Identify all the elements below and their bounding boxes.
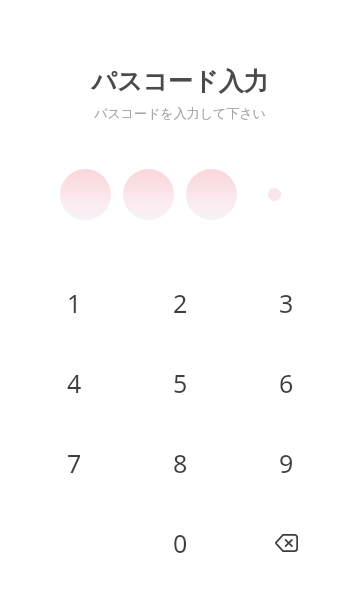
button[interactable]: 3 <box>233 263 339 343</box>
button[interactable]: 8 <box>127 423 233 503</box>
button[interactable]: 7 <box>21 423 127 503</box>
other: Backspace <box>274 534 298 552</box>
staticText: 3 <box>279 286 294 320</box>
button[interactable]: 5 <box>127 343 233 423</box>
button[interactable]: 0 <box>127 503 233 583</box>
staticText: 2 <box>173 286 188 320</box>
button[interactable]: 4 <box>21 343 127 423</box>
staticText: 7 <box>67 446 82 480</box>
button[interactable]: 1 <box>21 263 127 343</box>
button[interactable]: Backspace <box>233 503 339 583</box>
staticText: パスコードを入力して下さい <box>0 105 360 121</box>
staticText: 0 <box>173 526 188 560</box>
button[interactable]: 2 <box>127 263 233 343</box>
staticText: 4 <box>67 366 82 400</box>
staticText: 5 <box>173 366 188 400</box>
staticText: パスコード入力 <box>0 66 360 97</box>
button[interactable]: 6 <box>233 343 339 423</box>
staticText: 8 <box>173 446 188 480</box>
button[interactable]: 9 <box>233 423 339 503</box>
staticText: 1 <box>67 286 82 320</box>
staticText: 6 <box>279 366 294 400</box>
staticText: 9 <box>279 446 294 480</box>
